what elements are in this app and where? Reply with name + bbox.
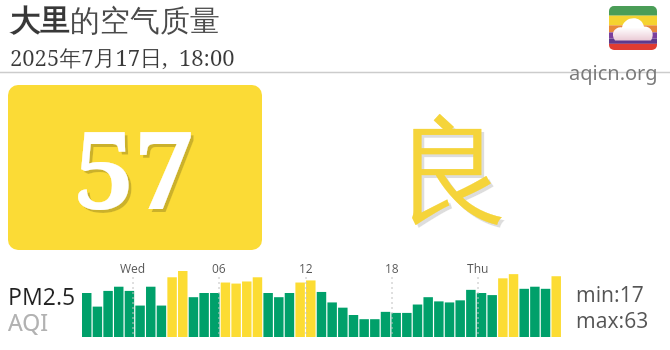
button[interactable]: Air quality for Dali, AQI 57, good [0,0,670,350]
